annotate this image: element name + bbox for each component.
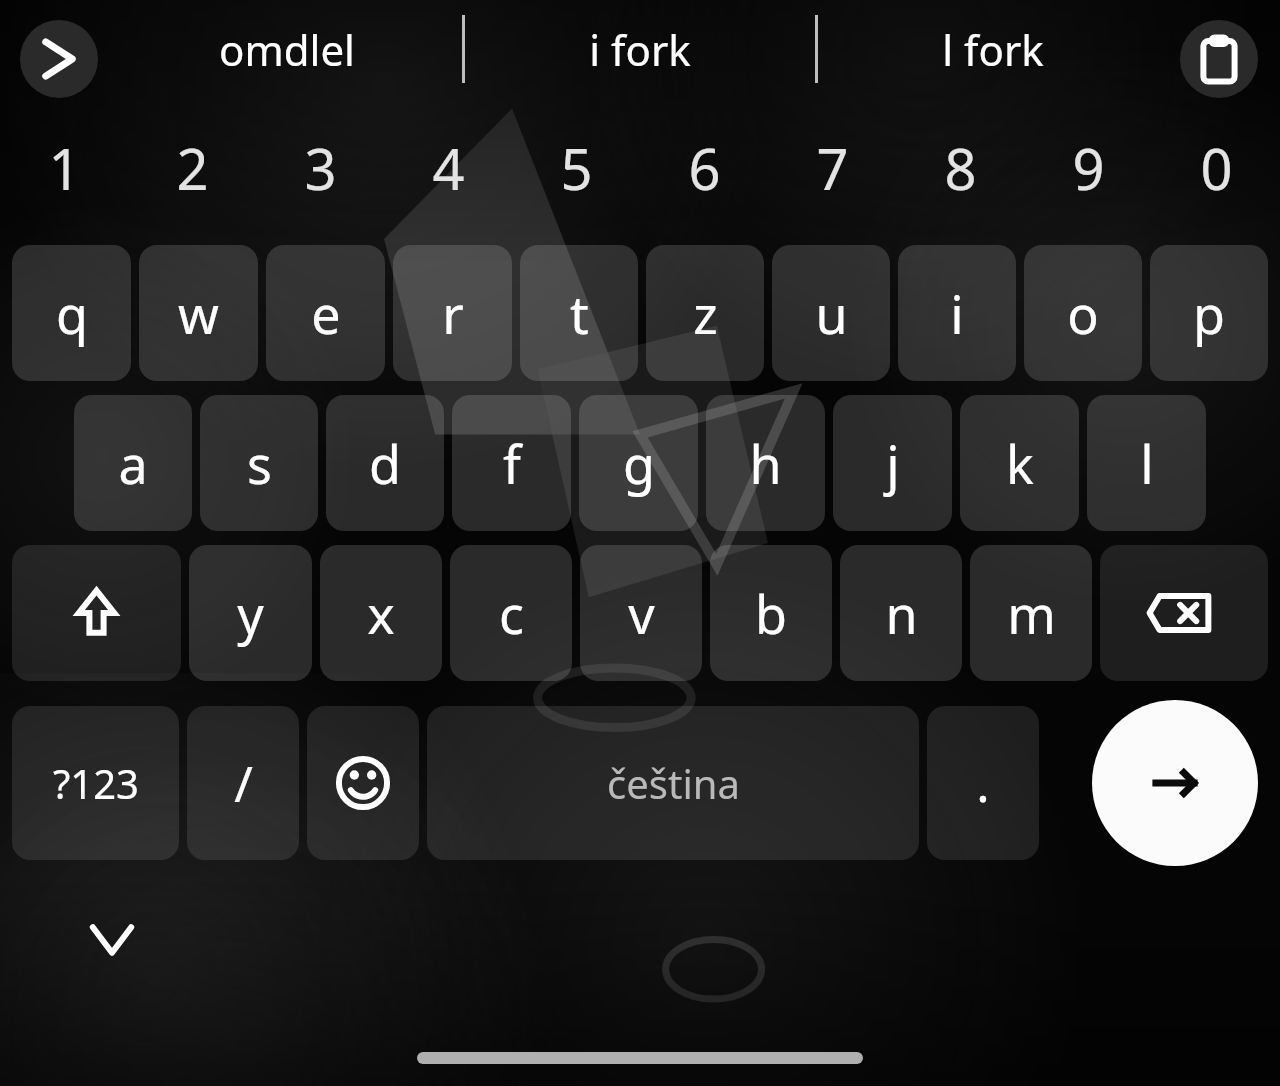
button[interactable]: k (960, 395, 1079, 531)
button[interactable]: 8 (896, 98, 1024, 238)
staticText: 1 (48, 130, 81, 206)
button[interactable]: 2 (128, 98, 256, 238)
button[interactable]: 9 (1024, 98, 1152, 238)
button[interactable]: y (189, 545, 312, 681)
staticText: k (1006, 428, 1034, 499)
button[interactable]: 4 (384, 98, 512, 238)
staticText: 3 (304, 130, 337, 206)
button[interactable]: v (580, 545, 702, 681)
staticText: ?123 (53, 756, 139, 810)
button[interactable]: omdlel (112, 0, 462, 98)
staticText: v (628, 578, 655, 649)
staticText: p (1193, 278, 1225, 349)
staticText: g (623, 428, 655, 499)
button[interactable]: Expand suggestions (20, 20, 98, 98)
staticText: omdlel (219, 21, 355, 78)
staticText: u (815, 278, 848, 349)
button[interactable]: o (1024, 245, 1142, 381)
button[interactable]: b (710, 545, 832, 681)
button[interactable]: t (520, 245, 638, 381)
button[interactable]: c (450, 545, 572, 681)
button[interactable]: 6 (640, 98, 768, 238)
staticText: e (311, 278, 341, 349)
staticText: čeština (607, 756, 740, 810)
button[interactable]: l (1087, 395, 1206, 531)
staticText: m (1007, 578, 1056, 649)
button[interactable]: i (898, 245, 1016, 381)
button[interactable]: / (187, 706, 299, 860)
button[interactable]: u (772, 245, 890, 381)
staticText: n (885, 578, 918, 649)
button[interactable]: w (139, 245, 258, 381)
staticText: / (234, 749, 253, 817)
staticText: 6 (688, 130, 721, 206)
staticText: c (499, 578, 524, 649)
button[interactable]: 7 (768, 98, 896, 238)
staticText: a (118, 428, 148, 499)
staticText: w (178, 278, 219, 349)
button[interactable]: j (833, 395, 952, 531)
button[interactable]: a (74, 395, 192, 531)
staticText: s (247, 428, 272, 499)
staticText: r (442, 278, 464, 349)
button[interactable]: f (452, 395, 571, 531)
staticText: z (693, 278, 718, 349)
staticText: i fork (589, 21, 691, 78)
staticText: o (1067, 278, 1099, 349)
staticText: 5 (560, 130, 593, 206)
staticText: 0 (1200, 130, 1233, 206)
staticText: 2 (176, 130, 209, 206)
button[interactable]: m (970, 545, 1092, 681)
button[interactable]: g (579, 395, 698, 531)
button[interactable]: Enter (1092, 700, 1258, 866)
staticText: q (56, 278, 88, 349)
button[interactable]: q (12, 245, 131, 381)
button[interactable]: h (706, 395, 825, 531)
staticText: l (1140, 428, 1154, 499)
staticText: f (503, 428, 521, 499)
staticText: 4 (432, 130, 465, 206)
staticText: y (237, 578, 264, 649)
button[interactable]: čeština (427, 706, 919, 860)
staticText: b (755, 578, 787, 649)
button[interactable]: i fork (465, 0, 815, 98)
button[interactable]: ?123 (12, 706, 179, 860)
staticText: d (369, 428, 401, 499)
staticText: j (886, 428, 900, 499)
button[interactable]: 5 (512, 98, 640, 238)
button[interactable]: Clipboard (1180, 20, 1258, 98)
button[interactable]: l fork (818, 0, 1168, 98)
staticText: t (570, 278, 589, 349)
button[interactable]: s (200, 395, 318, 531)
button[interactable]: 3 (256, 98, 384, 238)
button[interactable]: Shift (12, 545, 181, 681)
button[interactable]: e (266, 245, 385, 381)
staticText: 7 (816, 130, 849, 206)
staticText: 8 (944, 130, 977, 206)
button[interactable]: n (840, 545, 962, 681)
button[interactable]: 1 (0, 98, 128, 238)
button[interactable]: p (1150, 245, 1268, 381)
staticText: . (976, 749, 990, 817)
staticText: l fork (942, 21, 1044, 78)
button[interactable]: d (326, 395, 444, 531)
button[interactable]: z (646, 245, 764, 381)
staticText: x (367, 578, 395, 649)
staticText: h (749, 428, 782, 499)
button[interactable]: Emoji (307, 706, 419, 860)
button[interactable]: 0 (1152, 98, 1280, 238)
staticText: i (950, 278, 964, 349)
button[interactable]: Backspace (1100, 545, 1268, 681)
button[interactable]: x (320, 545, 442, 681)
button[interactable]: r (393, 245, 512, 381)
button[interactable]: Hide keyboard (72, 900, 152, 980)
staticText: 9 (1072, 130, 1105, 206)
button[interactable]: . (927, 706, 1039, 860)
